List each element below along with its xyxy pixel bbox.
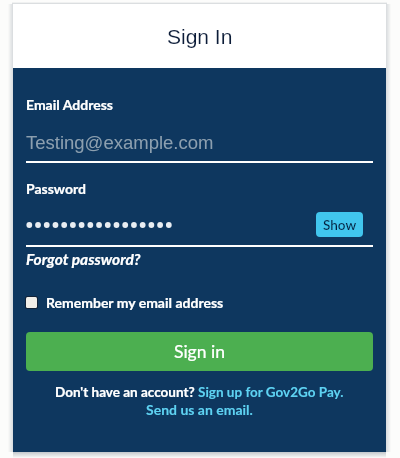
staticText: Show — [323, 217, 357, 233]
staticText: Remember my email address — [46, 294, 224, 311]
button[interactable]: Sign up for Gov2Go Pay. — [198, 384, 344, 400]
staticText: Don't have an account? — [55, 384, 198, 400]
staticText: Password — [26, 180, 86, 197]
button[interactable]: Show — [316, 212, 363, 237]
staticText: Sign In — [167, 25, 233, 48]
button[interactable]: Sign in — [26, 332, 373, 371]
button[interactable]: Send us an email. — [146, 401, 253, 418]
button[interactable]: Email address field — [13, 118, 386, 163]
button[interactable]: Remember my email address — [25, 294, 224, 311]
staticText: Sign in — [174, 341, 225, 362]
button[interactable]: Forgot password? — [26, 250, 141, 269]
staticText: Email Address — [26, 96, 113, 113]
staticText: Testing@example.com — [26, 132, 214, 153]
